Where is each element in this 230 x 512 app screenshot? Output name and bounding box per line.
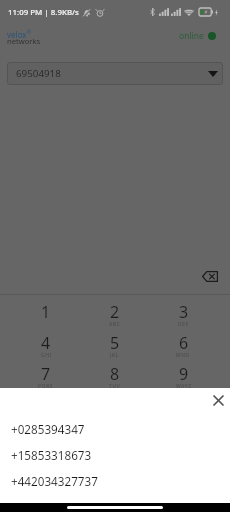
staticText: ®	[27, 29, 31, 35]
staticText: +15853318673	[11, 447, 92, 463]
button[interactable]: 8	[80, 357, 149, 388]
staticText: online	[179, 30, 204, 42]
button[interactable]: 1	[12, 295, 80, 326]
button[interactable]: 69504918	[7, 62, 223, 85]
staticText: GHI	[41, 352, 52, 359]
button[interactable]: +0285394347	[0, 416, 230, 442]
staticText: networks	[7, 36, 41, 46]
button[interactable]: +442034327737	[0, 468, 230, 494]
button[interactable]: 6	[149, 326, 218, 357]
button[interactable]: Backspace	[198, 266, 222, 286]
staticText: 5	[110, 332, 120, 354]
button[interactable]: 2	[80, 295, 149, 326]
staticText: +442034327737	[11, 473, 98, 489]
staticText: 6	[179, 332, 189, 354]
staticText: 7	[41, 363, 51, 385]
staticText: 1	[41, 301, 51, 323]
button[interactable]: 7	[12, 357, 80, 388]
staticText: 4	[41, 332, 51, 354]
staticText: 9	[179, 363, 189, 385]
staticText: 11:09 PM | 8.9KB/s	[8, 7, 79, 18]
button[interactable]: Close	[208, 390, 228, 410]
staticText: 2	[110, 301, 120, 323]
button[interactable]: 4	[12, 326, 80, 357]
button[interactable]: 9	[149, 357, 218, 388]
staticText: ABC	[109, 321, 121, 328]
staticText: 69504918	[16, 67, 61, 80]
staticText: TUV	[109, 383, 121, 390]
staticText: MNO	[176, 352, 191, 359]
staticText: velox	[7, 29, 27, 40]
button[interactable]: 3	[149, 295, 218, 326]
staticText: 3	[179, 301, 189, 323]
staticText: PQRS	[38, 383, 54, 390]
staticText: WXYZ	[176, 383, 192, 390]
staticText: +0285394347	[11, 421, 85, 437]
staticText: JKL	[110, 352, 119, 359]
button[interactable]: 5	[80, 326, 149, 357]
staticText: 8	[110, 363, 120, 385]
button[interactable]: +15853318673	[0, 442, 230, 468]
staticText: DEF	[178, 321, 189, 328]
